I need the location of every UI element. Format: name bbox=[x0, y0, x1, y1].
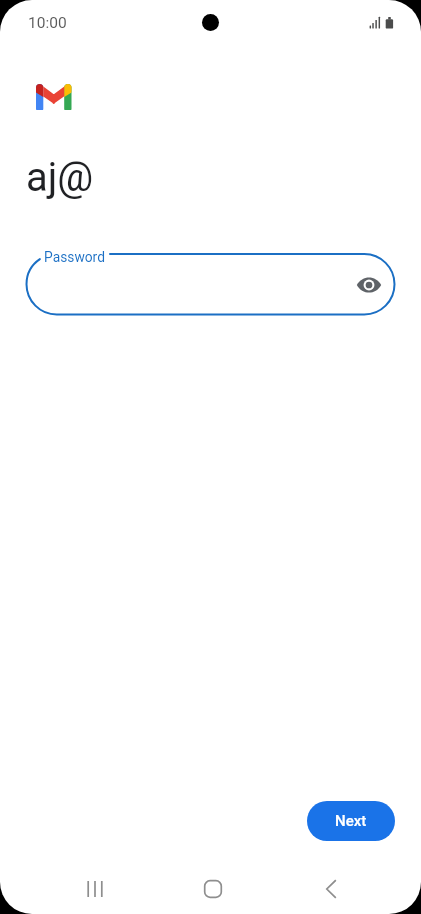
button[interactable]: Password bbox=[26, 246, 395, 316]
button[interactable]: Home bbox=[189, 865, 237, 913]
staticText: 10:00 bbox=[28, 14, 67, 32]
button[interactable]: Recents bbox=[71, 865, 119, 913]
button[interactable]: Show password bbox=[353, 269, 385, 301]
staticText: Next bbox=[335, 812, 367, 830]
staticText: Password bbox=[44, 249, 105, 265]
button[interactable]: Back bbox=[307, 865, 355, 913]
staticText: aj@ bbox=[26, 154, 94, 201]
button[interactable]: Next bbox=[307, 801, 395, 841]
